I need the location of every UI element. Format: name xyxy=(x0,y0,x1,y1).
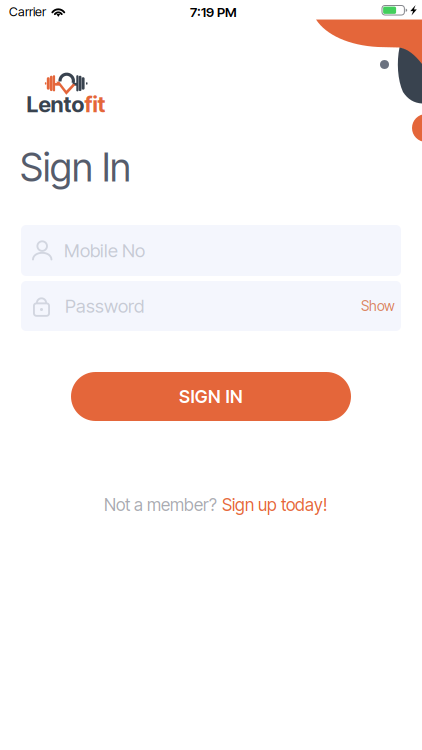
staticText: Carrier xyxy=(9,4,46,19)
staticText: Sign up today! xyxy=(222,494,327,515)
staticText: 7:19 PM xyxy=(190,4,237,20)
button[interactable]: SIGN IN xyxy=(71,372,351,421)
staticText: Not a member? xyxy=(104,494,217,515)
staticText: Password xyxy=(65,295,144,317)
staticText: fit xyxy=(84,91,105,118)
staticText: Show xyxy=(361,297,395,314)
staticText: Mobile No xyxy=(64,239,145,262)
staticText: SIGN IN xyxy=(179,386,243,407)
button[interactable]: Show xyxy=(361,297,401,314)
staticText: Sign In xyxy=(20,144,131,191)
button[interactable]: Sign up today! xyxy=(222,494,327,515)
staticText: Lento xyxy=(26,91,84,118)
